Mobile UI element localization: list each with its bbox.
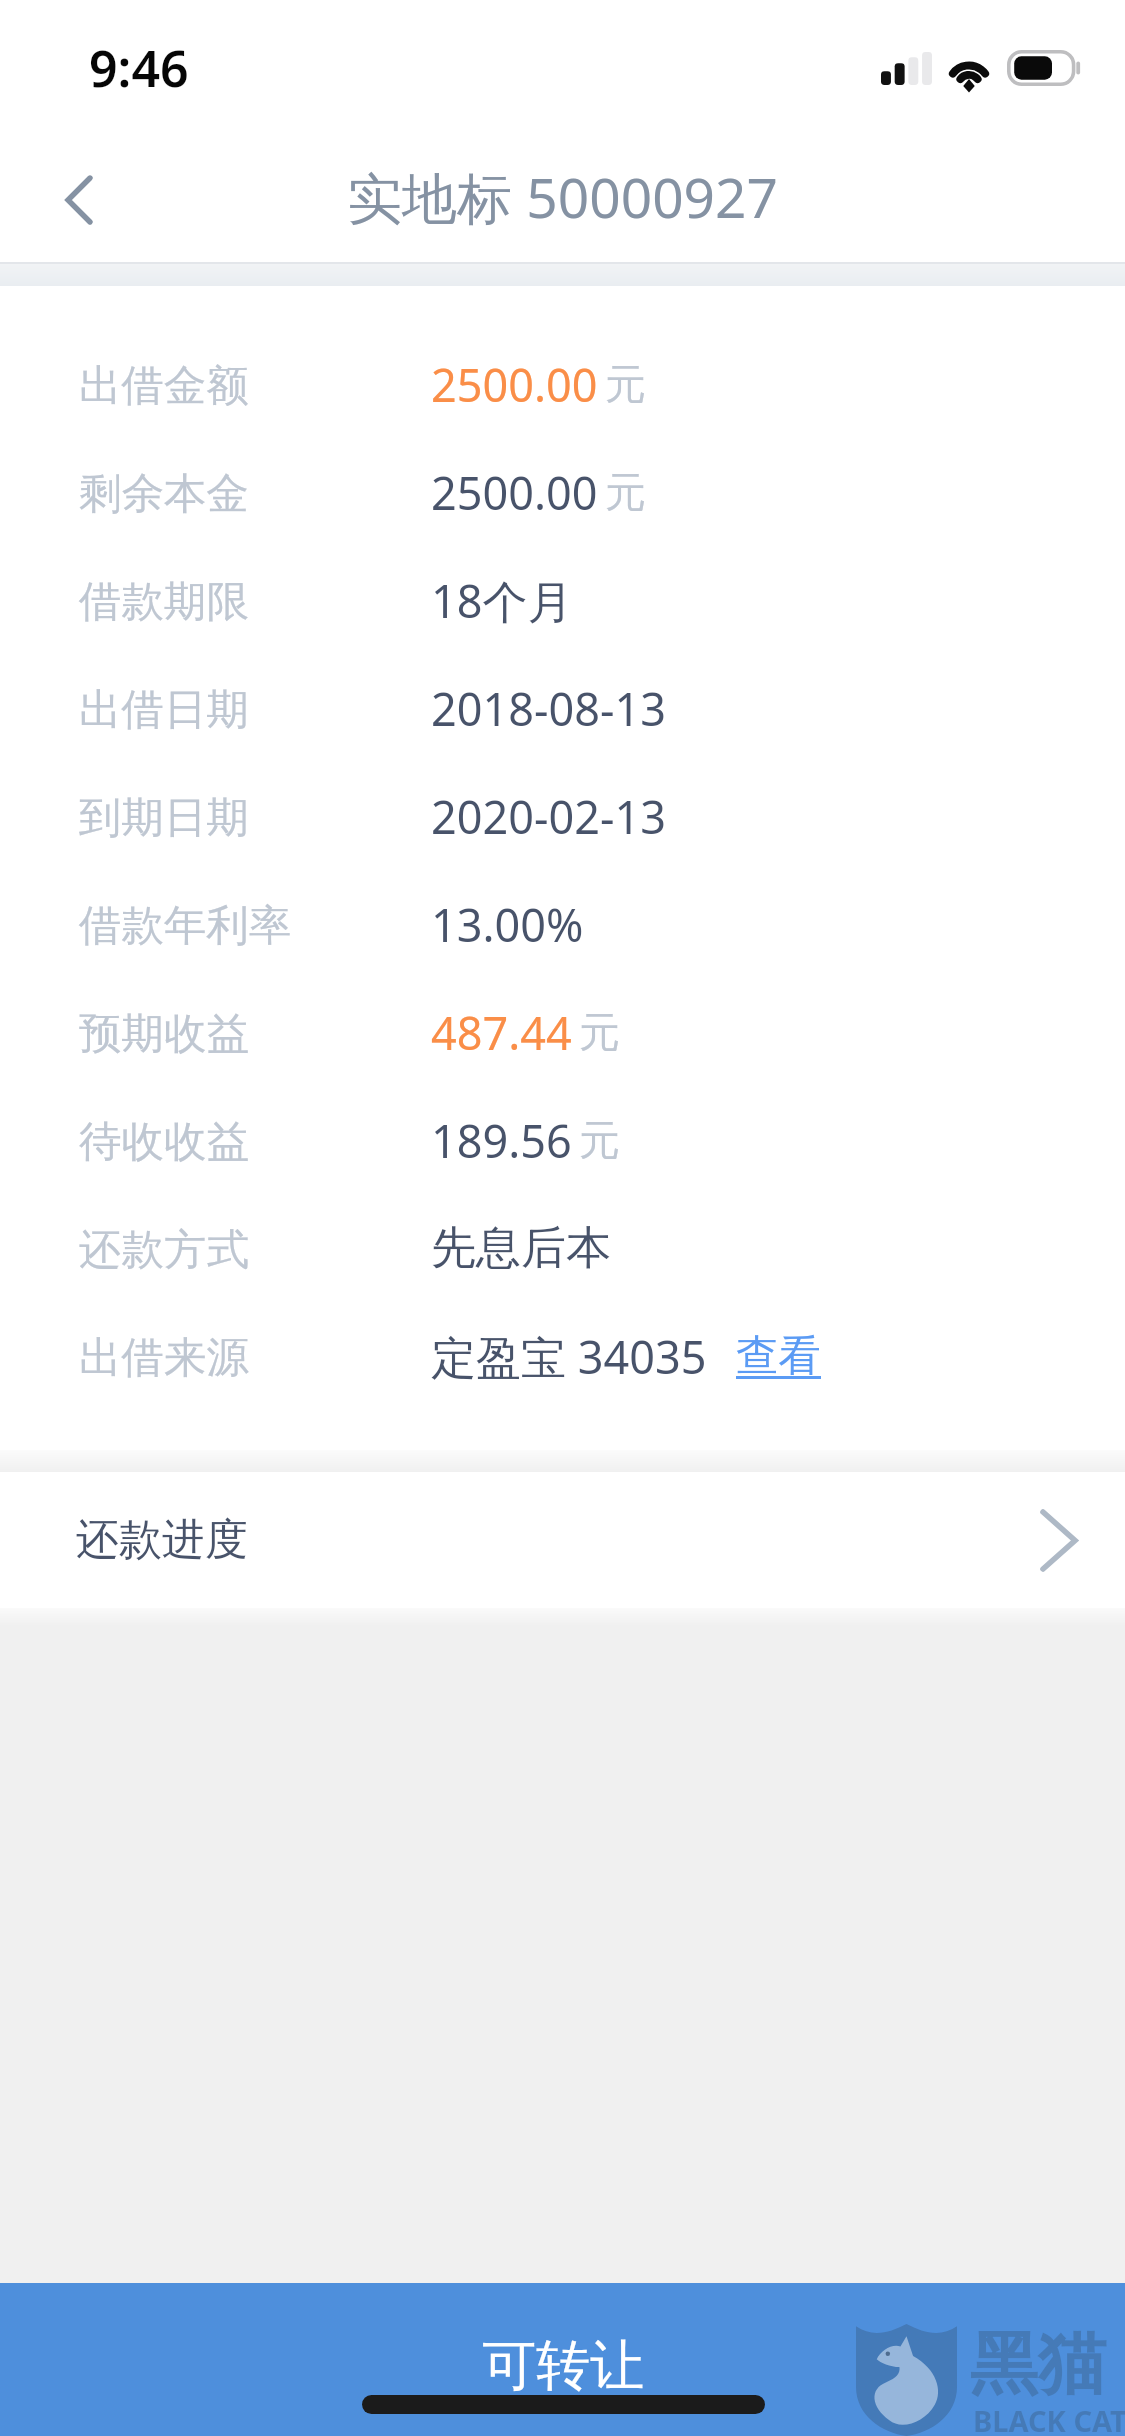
staticText: 黑猫	[970, 2322, 1106, 2408]
staticText: 出借金额	[79, 359, 249, 413]
button[interactable]: 可转让	[0, 2283, 1125, 2436]
staticText: 剩余本金	[79, 467, 249, 521]
staticText: 元	[605, 467, 646, 519]
staticText: 18个月	[431, 570, 573, 631]
staticText: 到期日期	[79, 791, 249, 845]
button[interactable]: 查看	[732, 1319, 825, 1393]
staticText: 待收收益	[79, 1115, 249, 1169]
staticText: 实地标 50000927	[347, 159, 778, 234]
button[interactable]: Back	[18, 139, 139, 260]
staticText: 预期收益	[79, 1007, 249, 1061]
staticText: 2018-08-13	[431, 678, 666, 739]
staticText: 2500.00	[431, 462, 598, 523]
staticText: 2020-02-13	[431, 786, 666, 847]
staticText: 还款方式	[79, 1223, 249, 1277]
staticText: 189.56	[431, 1110, 572, 1171]
staticText: 出借来源	[79, 1331, 249, 1385]
staticText: 还款进度	[76, 1513, 248, 1567]
staticText: 查看	[736, 1329, 821, 1383]
staticText: BLACK CAT	[973, 2401, 1125, 2436]
staticText: 487.44	[431, 1002, 572, 1063]
staticText: 借款期限	[79, 575, 249, 629]
staticText: 元	[605, 359, 646, 411]
staticText: 元	[579, 1115, 620, 1167]
staticText: 先息后本	[431, 1220, 611, 1277]
staticText: 借款年利率	[79, 899, 292, 953]
staticText: 出借日期	[79, 683, 249, 737]
staticText: 定盈宝 34035	[431, 1326, 707, 1387]
staticText: 9:46	[89, 34, 189, 102]
staticText: 13.00%	[431, 894, 584, 955]
staticText: 可转让	[482, 2332, 644, 2400]
staticText: 元	[579, 1007, 620, 1059]
button[interactable]: 还款进度	[0, 1472, 1125, 1608]
staticText: 2500.00	[431, 354, 598, 415]
